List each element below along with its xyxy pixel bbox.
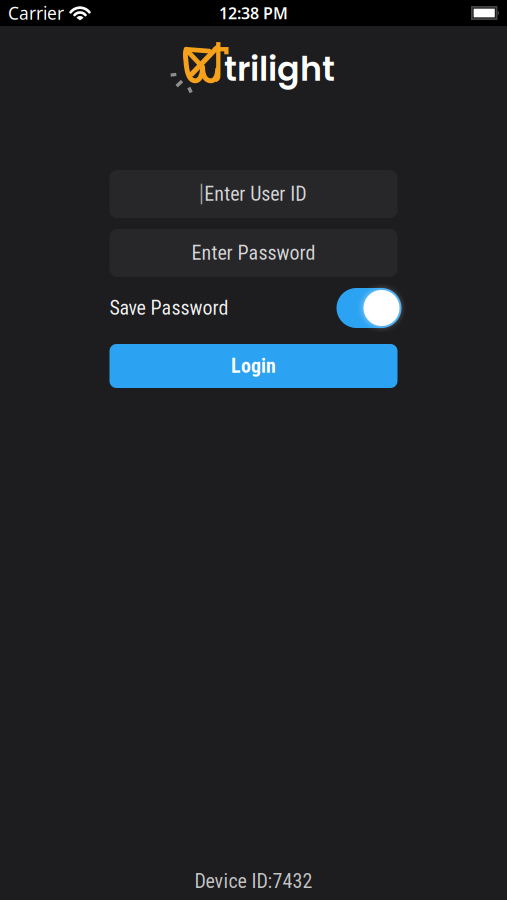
staticText: Enter User ID xyxy=(204,182,306,206)
button[interactable]: Enter Password xyxy=(109,229,397,277)
staticText: trilight xyxy=(224,46,335,92)
staticText: 12:38 PM xyxy=(219,2,288,24)
staticText: Device ID:7432 xyxy=(194,870,312,893)
staticText: Save Password xyxy=(109,296,228,320)
button[interactable]: Save Password xyxy=(336,288,401,328)
staticText: Login xyxy=(231,354,276,378)
button[interactable]: Enter User ID xyxy=(109,170,397,218)
button[interactable]: Login xyxy=(109,344,397,388)
staticText: Carrier xyxy=(8,1,64,24)
staticText: Enter Password xyxy=(191,241,315,265)
